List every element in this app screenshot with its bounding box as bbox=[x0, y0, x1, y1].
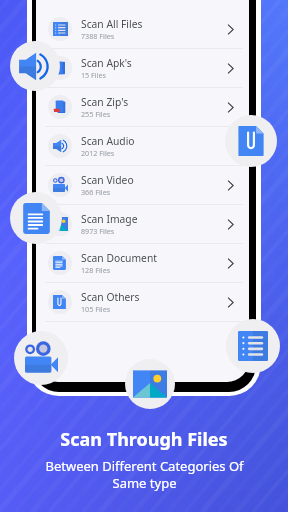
staticText: 15 Files bbox=[81, 70, 107, 80]
button[interactable]: Scan Zip's bbox=[36, 88, 249, 126]
button[interactable]: Scan Audio bbox=[10, 41, 60, 91]
staticText: Scan Document bbox=[81, 251, 157, 265]
button[interactable]: Scan Audio bbox=[36, 127, 249, 165]
button[interactable]: Scan Video bbox=[14, 331, 68, 385]
staticText: Scan Through Files bbox=[60, 427, 228, 452]
staticText: Between Different Categories Of Same typ… bbox=[45, 457, 244, 492]
button[interactable]: Scan Video bbox=[36, 166, 249, 204]
staticText: Scan Apk's bbox=[81, 56, 132, 70]
button[interactable]: Scan Others bbox=[36, 283, 249, 321]
button[interactable]: Scan All Files bbox=[226, 319, 280, 373]
button[interactable]: Scan Document bbox=[36, 244, 249, 282]
button[interactable]: Scan Image bbox=[36, 205, 249, 243]
staticText: 128 Files bbox=[81, 265, 111, 275]
staticText: 255 Files bbox=[81, 109, 111, 119]
staticText: Scan Audio bbox=[81, 134, 135, 148]
staticText: 8973 Files bbox=[81, 226, 115, 236]
staticText: 105 Files bbox=[81, 304, 111, 314]
staticText: 7388 Files bbox=[81, 31, 115, 41]
staticText: 2012 Files bbox=[81, 148, 115, 158]
staticText: Scan Image bbox=[81, 212, 138, 226]
staticText: Scan All Files bbox=[81, 17, 143, 31]
staticText: 366 Files bbox=[81, 187, 111, 197]
button[interactable]: Scan Image bbox=[125, 359, 175, 409]
button[interactable]: Scan Others bbox=[225, 115, 277, 167]
button[interactable]: Scan Apk's bbox=[36, 49, 249, 87]
button[interactable]: Scan Document bbox=[10, 192, 62, 244]
button[interactable]: Scan All Files bbox=[36, 10, 249, 48]
staticText: Scan Others bbox=[81, 290, 140, 304]
staticText: Scan Video bbox=[81, 173, 134, 187]
staticText: Scan Zip's bbox=[81, 95, 129, 109]
